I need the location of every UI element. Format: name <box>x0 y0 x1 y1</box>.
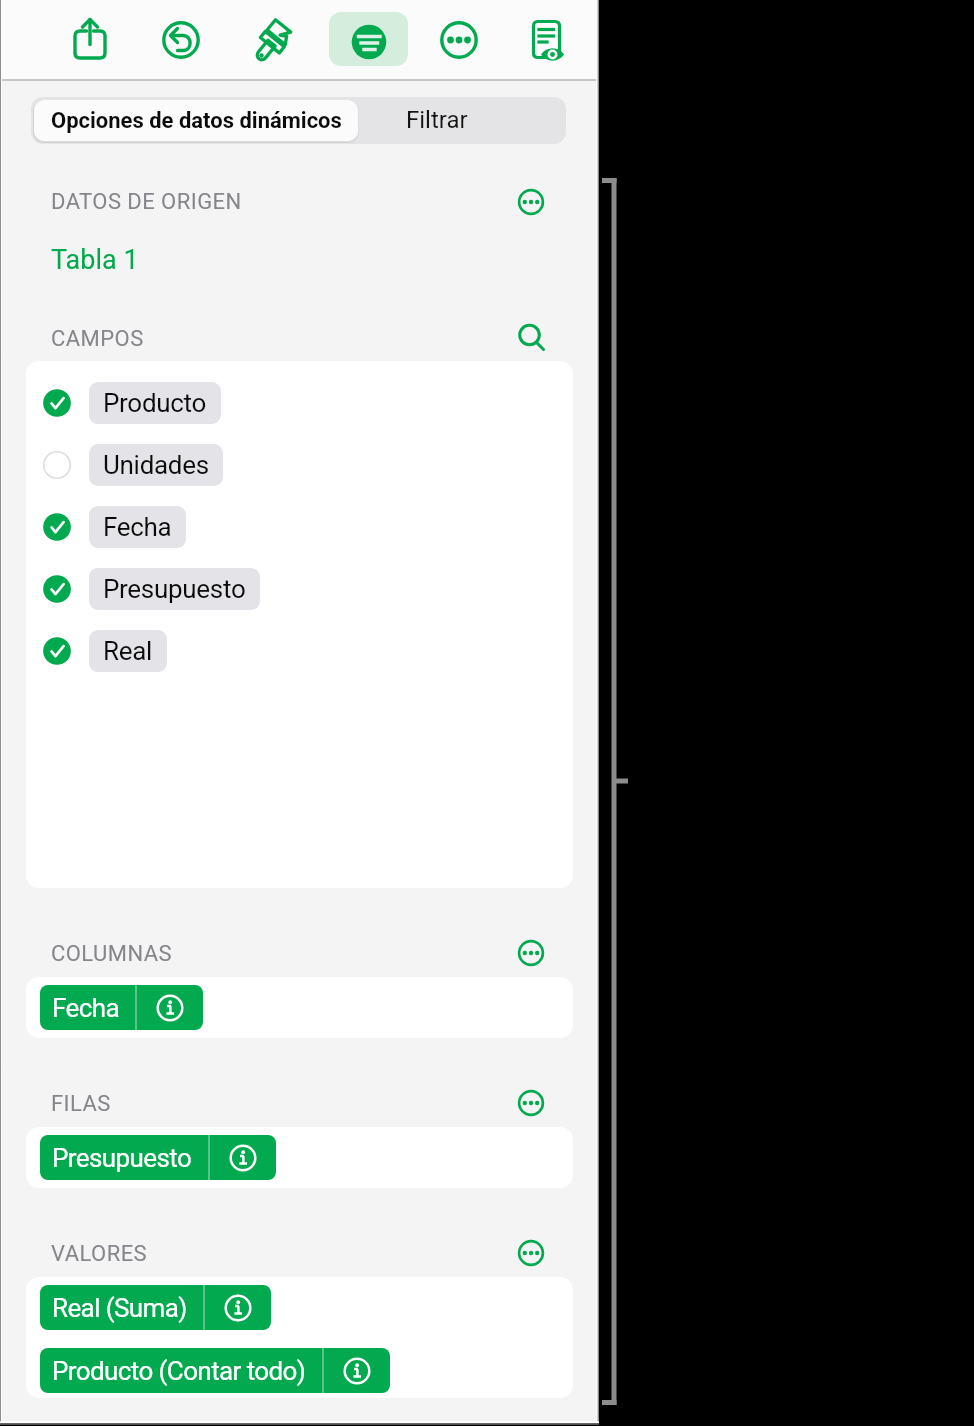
staticText: Opciones de datos dinámicos <box>51 108 342 134</box>
staticText: CAMPOS <box>51 326 144 352</box>
staticText: Tabla 1 <box>51 244 139 276</box>
button[interactable]: Tabla 1 <box>51 244 139 276</box>
staticText: Unidades <box>103 450 209 480</box>
button[interactable]: Producto <box>26 372 573 434</box>
staticText: Presupuesto <box>103 574 246 604</box>
button[interactable]: More options <box>509 180 553 224</box>
button[interactable]: Presupuesto <box>40 1135 276 1180</box>
button[interactable]: Real <box>26 620 573 682</box>
button[interactable]: Unidades <box>26 434 573 496</box>
button[interactable]: Fecha <box>40 985 203 1030</box>
button[interactable]: Document options <box>516 10 576 70</box>
button[interactable]: Organize <box>329 12 408 66</box>
button[interactable]: Fecha <box>26 496 573 558</box>
button[interactable]: More options <box>509 1081 553 1125</box>
staticText: Fecha <box>103 512 172 542</box>
button[interactable]: Style <box>243 10 303 70</box>
staticText: VALORES <box>51 1241 148 1267</box>
staticText: Real <box>103 636 153 666</box>
staticText: Presupuesto <box>52 1143 192 1173</box>
staticText: COLUMNAS <box>51 941 173 967</box>
button[interactable]: Presupuesto <box>26 558 573 620</box>
button[interactable]: Share <box>60 10 120 70</box>
button[interactable]: More options <box>509 931 553 975</box>
button[interactable]: Producto (Contar todo) <box>40 1348 390 1393</box>
staticText: Filtrar <box>406 106 468 134</box>
staticText: FILAS <box>51 1091 111 1117</box>
staticText: Real (Suma) <box>52 1293 187 1323</box>
button[interactable]: Undo <box>151 10 211 70</box>
staticText: Producto <box>103 388 207 418</box>
button[interactable]: Search <box>510 316 554 360</box>
button[interactable]: More <box>429 10 489 70</box>
button[interactable]: Opciones de datos dinámicos <box>34 100 358 141</box>
staticText: Fecha <box>52 993 119 1023</box>
button[interactable]: Real (Suma) <box>40 1285 271 1330</box>
staticText: Producto (Contar todo) <box>52 1356 306 1386</box>
staticText: DATOS DE ORIGEN <box>51 189 242 215</box>
button[interactable]: Filtrar <box>358 97 566 144</box>
button[interactable]: More options <box>509 1231 553 1275</box>
